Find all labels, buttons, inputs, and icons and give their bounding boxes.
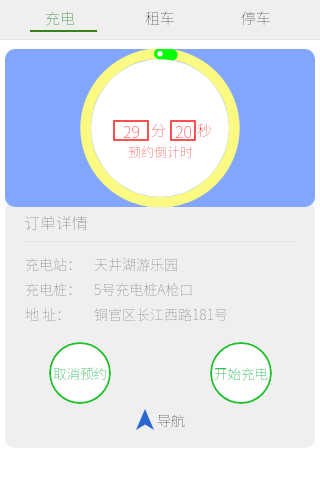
staticText: 5号充电桩A枪口	[94, 279, 194, 299]
button[interactable]: 导航	[5, 409, 315, 430]
staticText: 地 址：	[25, 304, 71, 324]
staticText: 停车	[241, 7, 272, 29]
staticText: 导航	[157, 410, 185, 430]
button[interactable]: 开始充电	[210, 342, 272, 404]
staticText: 天井湖游乐园	[94, 254, 178, 274]
button[interactable]: 租车	[130, 0, 190, 39]
button[interactable]: 充电桩：	[5, 276, 315, 301]
staticText: 秒	[197, 119, 213, 141]
button[interactable]: 充电站：	[5, 251, 315, 276]
staticText: 分	[151, 119, 167, 141]
button[interactable]: 地 址：	[5, 301, 315, 326]
staticText: 充电桩：	[25, 279, 81, 299]
staticText: 铜官区长江西路181号	[94, 304, 228, 324]
button[interactable]: 取消预约	[49, 342, 111, 404]
button[interactable]: 充电	[30, 0, 90, 39]
staticText: 租车	[145, 7, 176, 29]
staticText: 充电	[45, 7, 76, 29]
staticText: 29	[123, 119, 140, 142]
staticText: 预约倒计时	[128, 142, 194, 161]
staticText: 20	[175, 119, 192, 142]
staticText: 订单详情	[24, 210, 89, 233]
staticText: 充电站：	[25, 254, 81, 274]
staticText: 开始充电	[212, 363, 270, 383]
staticText: 取消预约	[51, 363, 109, 383]
button[interactable]: 停车	[226, 0, 286, 39]
